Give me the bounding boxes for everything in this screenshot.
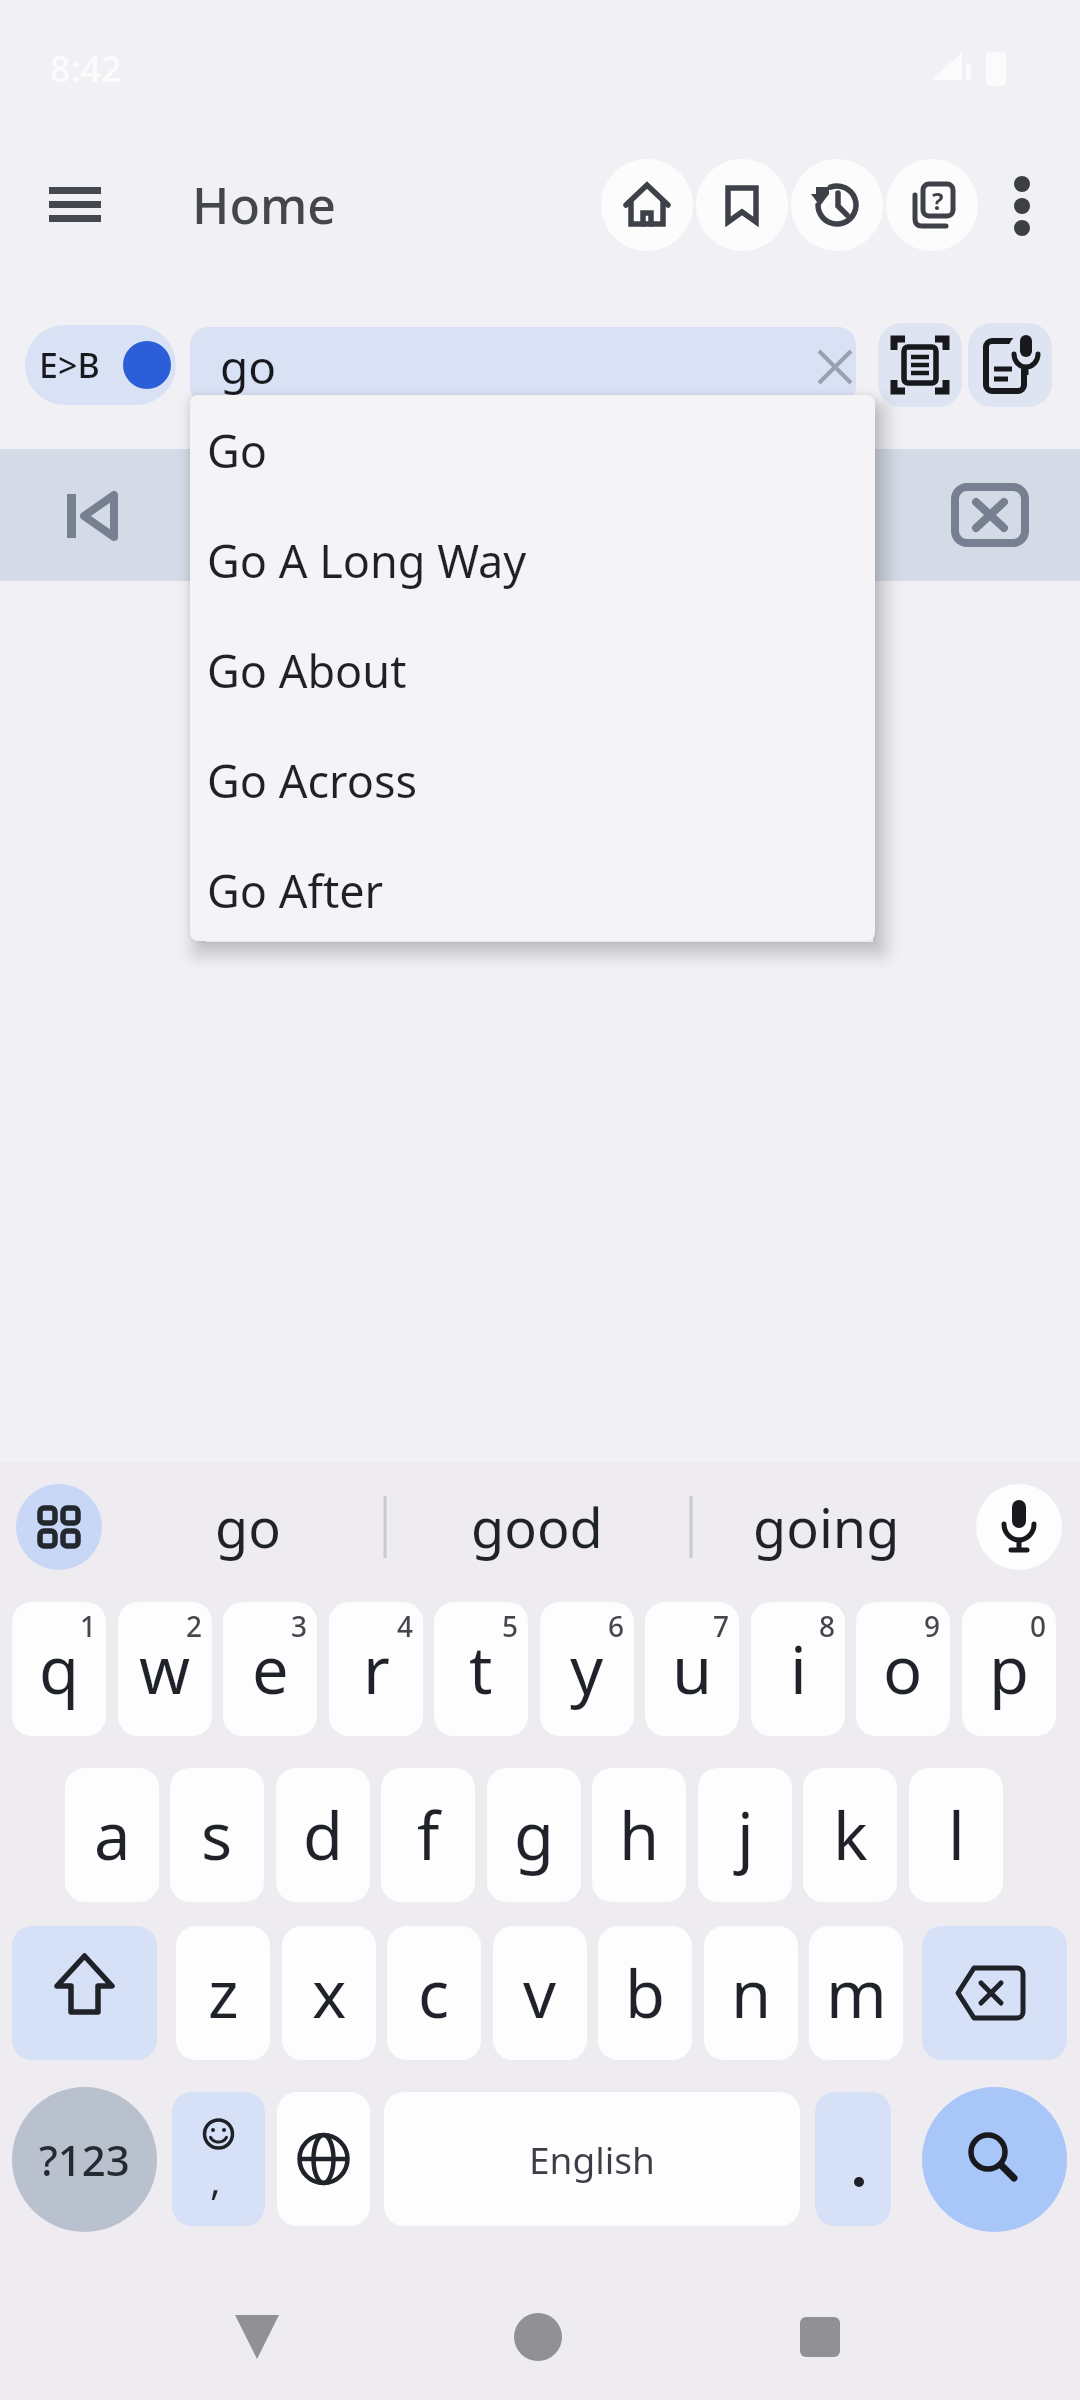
staticText: n	[731, 1949, 772, 2038]
button[interactable]	[791, 159, 883, 251]
button[interactable]: o	[856, 1602, 950, 1736]
button[interactable]: g	[487, 1768, 581, 1902]
button[interactable]: f	[381, 1768, 475, 1902]
button[interactable]	[172, 2092, 265, 2226]
button[interactable]: p	[962, 1602, 1056, 1736]
button[interactable]: Go	[190, 395, 875, 505]
staticText: 8	[819, 1607, 836, 1645]
button[interactable]: y	[540, 1602, 634, 1736]
staticText: l	[948, 1791, 965, 1880]
staticText: 6	[608, 1607, 625, 1645]
button[interactable]: Go A Long Way	[190, 505, 875, 615]
staticText: Go About	[207, 640, 407, 701]
button[interactable]: k	[803, 1768, 897, 1902]
staticText: ?123	[39, 2131, 130, 2188]
staticText: w	[139, 1625, 191, 1714]
button[interactable]: d	[276, 1768, 370, 1902]
staticText: Go	[207, 420, 267, 481]
button[interactable]	[976, 1484, 1062, 1570]
button[interactable]: m	[809, 1926, 903, 2060]
button[interactable]: Go Across	[190, 725, 875, 835]
button[interactable]: ?	[886, 159, 978, 251]
staticText: 7	[713, 1607, 730, 1645]
button[interactable]: x	[282, 1926, 376, 2060]
button[interactable]: n	[704, 1926, 798, 2060]
staticText: go	[220, 335, 277, 398]
staticText: d	[303, 1791, 343, 1880]
button[interactable]	[601, 159, 693, 251]
staticText: E>B	[39, 342, 100, 388]
staticText: Go Across	[207, 750, 418, 811]
staticText: 9	[924, 1607, 941, 1645]
button[interactable]	[968, 323, 1052, 407]
button[interactable]: r	[329, 1602, 423, 1736]
staticText: Home	[192, 171, 336, 239]
button[interactable]	[36, 172, 114, 238]
staticText: a	[94, 1791, 131, 1880]
staticText: English	[529, 2134, 655, 2184]
staticText: t	[469, 1625, 493, 1714]
button[interactable]: l	[909, 1768, 1003, 1902]
button[interactable]: b	[598, 1926, 692, 2060]
button[interactable]: Go About	[190, 615, 875, 725]
button[interactable]: go	[190, 327, 856, 405]
staticText: i	[790, 1625, 807, 1714]
staticText: f	[417, 1791, 440, 1880]
button[interactable]: E>B	[25, 325, 176, 405]
staticText: e	[252, 1625, 289, 1714]
staticText: ?	[932, 184, 944, 217]
staticText: Go A Long Way	[207, 530, 527, 591]
button[interactable]: a	[65, 1768, 159, 1902]
staticText: v	[523, 1949, 557, 2038]
staticText: q	[39, 1625, 79, 1714]
button[interactable]: z	[176, 1926, 270, 2060]
button[interactable]: c	[387, 1926, 481, 2060]
button[interactable]: q	[12, 1602, 106, 1736]
button[interactable]	[216, 2295, 300, 2379]
button[interactable]: going	[696, 1481, 956, 1573]
staticText: u	[672, 1625, 713, 1714]
button[interactable]: h	[592, 1768, 686, 1902]
button[interactable]: s	[170, 1768, 264, 1902]
button[interactable]	[878, 323, 962, 407]
staticText: y	[570, 1625, 604, 1714]
button[interactable]: j	[698, 1768, 792, 1902]
staticText: x	[312, 1949, 347, 2038]
button[interactable]	[778, 2295, 862, 2379]
staticText: g	[514, 1791, 554, 1880]
staticText: z	[208, 1949, 239, 2038]
staticText: r	[363, 1625, 390, 1714]
button[interactable]	[40, 465, 140, 565]
button[interactable]	[815, 2092, 891, 2226]
button[interactable]: go	[118, 1481, 378, 1573]
staticText: 4	[397, 1607, 414, 1645]
button[interactable]: i	[751, 1602, 845, 1736]
button[interactable]	[696, 159, 788, 251]
staticText: h	[619, 1791, 660, 1880]
button[interactable]: u	[645, 1602, 739, 1736]
staticText: go	[215, 1490, 281, 1564]
button[interactable]	[12, 1926, 157, 2060]
button[interactable]	[922, 2087, 1067, 2232]
button[interactable]	[384, 2092, 800, 2226]
button[interactable]: t	[434, 1602, 528, 1736]
button[interactable]	[277, 2092, 370, 2226]
button[interactable]	[922, 1926, 1067, 2060]
button[interactable]: e	[223, 1602, 317, 1736]
staticText: p	[989, 1625, 1029, 1714]
staticText: k	[833, 1791, 868, 1880]
button[interactable]: ?123	[12, 2087, 157, 2232]
button[interactable]: Go After	[190, 835, 875, 945]
staticText: 1	[80, 1607, 97, 1645]
button[interactable]: v	[493, 1926, 587, 2060]
staticText: going	[753, 1490, 900, 1564]
button[interactable]: w	[118, 1602, 212, 1736]
button[interactable]	[16, 1484, 102, 1570]
button[interactable]	[992, 165, 1052, 245]
button[interactable]	[496, 2295, 580, 2379]
staticText: 0	[1030, 1607, 1047, 1645]
staticText: good	[471, 1490, 603, 1564]
button[interactable]: good	[407, 1481, 667, 1573]
staticText: ,	[210, 2152, 221, 2206]
button[interactable]	[940, 465, 1040, 565]
